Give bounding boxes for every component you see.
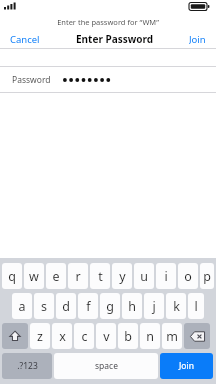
button[interactable]: space	[54, 353, 158, 379]
staticText: x	[59, 328, 66, 345]
staticText: r	[75, 268, 81, 285]
staticText: h	[128, 298, 136, 315]
button[interactable]: t	[90, 263, 110, 289]
staticText: a	[18, 298, 26, 315]
button[interactable]: p	[200, 263, 214, 289]
button[interactable]: n	[140, 323, 160, 349]
staticText: e	[52, 268, 60, 285]
staticText: m	[166, 328, 178, 345]
button[interactable]: m	[162, 323, 182, 349]
staticText: n	[146, 328, 154, 345]
staticText: f	[86, 298, 91, 315]
button[interactable]: g	[100, 293, 120, 319]
button[interactable]: q	[2, 263, 22, 289]
staticText: Join	[179, 360, 194, 372]
staticText: t	[98, 268, 103, 285]
button[interactable]: Join	[160, 353, 213, 379]
button[interactable]: f	[78, 293, 98, 319]
button[interactable]: u	[134, 263, 154, 289]
staticText: Password	[12, 74, 51, 86]
button[interactable]: Delete	[184, 323, 210, 349]
staticText: .?123	[17, 360, 38, 372]
button[interactable]: y	[112, 263, 132, 289]
staticText: d	[62, 298, 70, 315]
staticText: w	[29, 268, 39, 285]
staticText: l	[194, 298, 198, 315]
staticText: g	[106, 298, 114, 315]
staticText: Join	[189, 33, 206, 45]
button[interactable]: x	[52, 323, 72, 349]
button[interactable]: Join	[186, 30, 209, 48]
staticText: q	[8, 268, 16, 285]
button[interactable]: v	[96, 323, 116, 349]
button[interactable]: r	[68, 263, 88, 289]
button[interactable]: j	[144, 293, 164, 319]
staticText: p	[203, 268, 211, 285]
staticText: v	[103, 328, 110, 345]
staticText: Enter Password	[76, 32, 154, 46]
button[interactable]: z	[30, 323, 50, 349]
button[interactable]: s	[34, 293, 54, 319]
staticText: Enter the password for “WM”	[57, 17, 159, 27]
button[interactable]: k	[166, 293, 186, 319]
staticText: i	[164, 268, 168, 285]
staticText: y	[119, 268, 126, 285]
staticText: u	[140, 268, 148, 285]
staticText: b	[124, 328, 132, 345]
staticText: k	[173, 298, 180, 315]
button[interactable]: o	[178, 263, 198, 289]
staticText: space	[95, 360, 118, 372]
button[interactable]: h	[122, 293, 142, 319]
staticText: j	[152, 298, 156, 315]
button[interactable]: w	[24, 263, 44, 289]
button[interactable]: a	[12, 293, 32, 319]
staticText: s	[41, 298, 47, 315]
staticText: o	[184, 268, 192, 285]
button[interactable]: e	[46, 263, 66, 289]
button[interactable]: l	[188, 293, 204, 319]
button[interactable]: d	[56, 293, 76, 319]
button[interactable]: Shift	[2, 323, 28, 349]
button[interactable]: .?123	[2, 353, 52, 379]
button[interactable]: i	[156, 263, 176, 289]
button[interactable]: c	[74, 323, 94, 349]
staticText: z	[37, 328, 43, 345]
button[interactable]: Password	[0, 67, 216, 92]
button[interactable]: b	[118, 323, 138, 349]
button[interactable]: Cancel	[7, 30, 43, 48]
staticText: c	[81, 328, 88, 345]
staticText: Cancel	[10, 33, 40, 45]
